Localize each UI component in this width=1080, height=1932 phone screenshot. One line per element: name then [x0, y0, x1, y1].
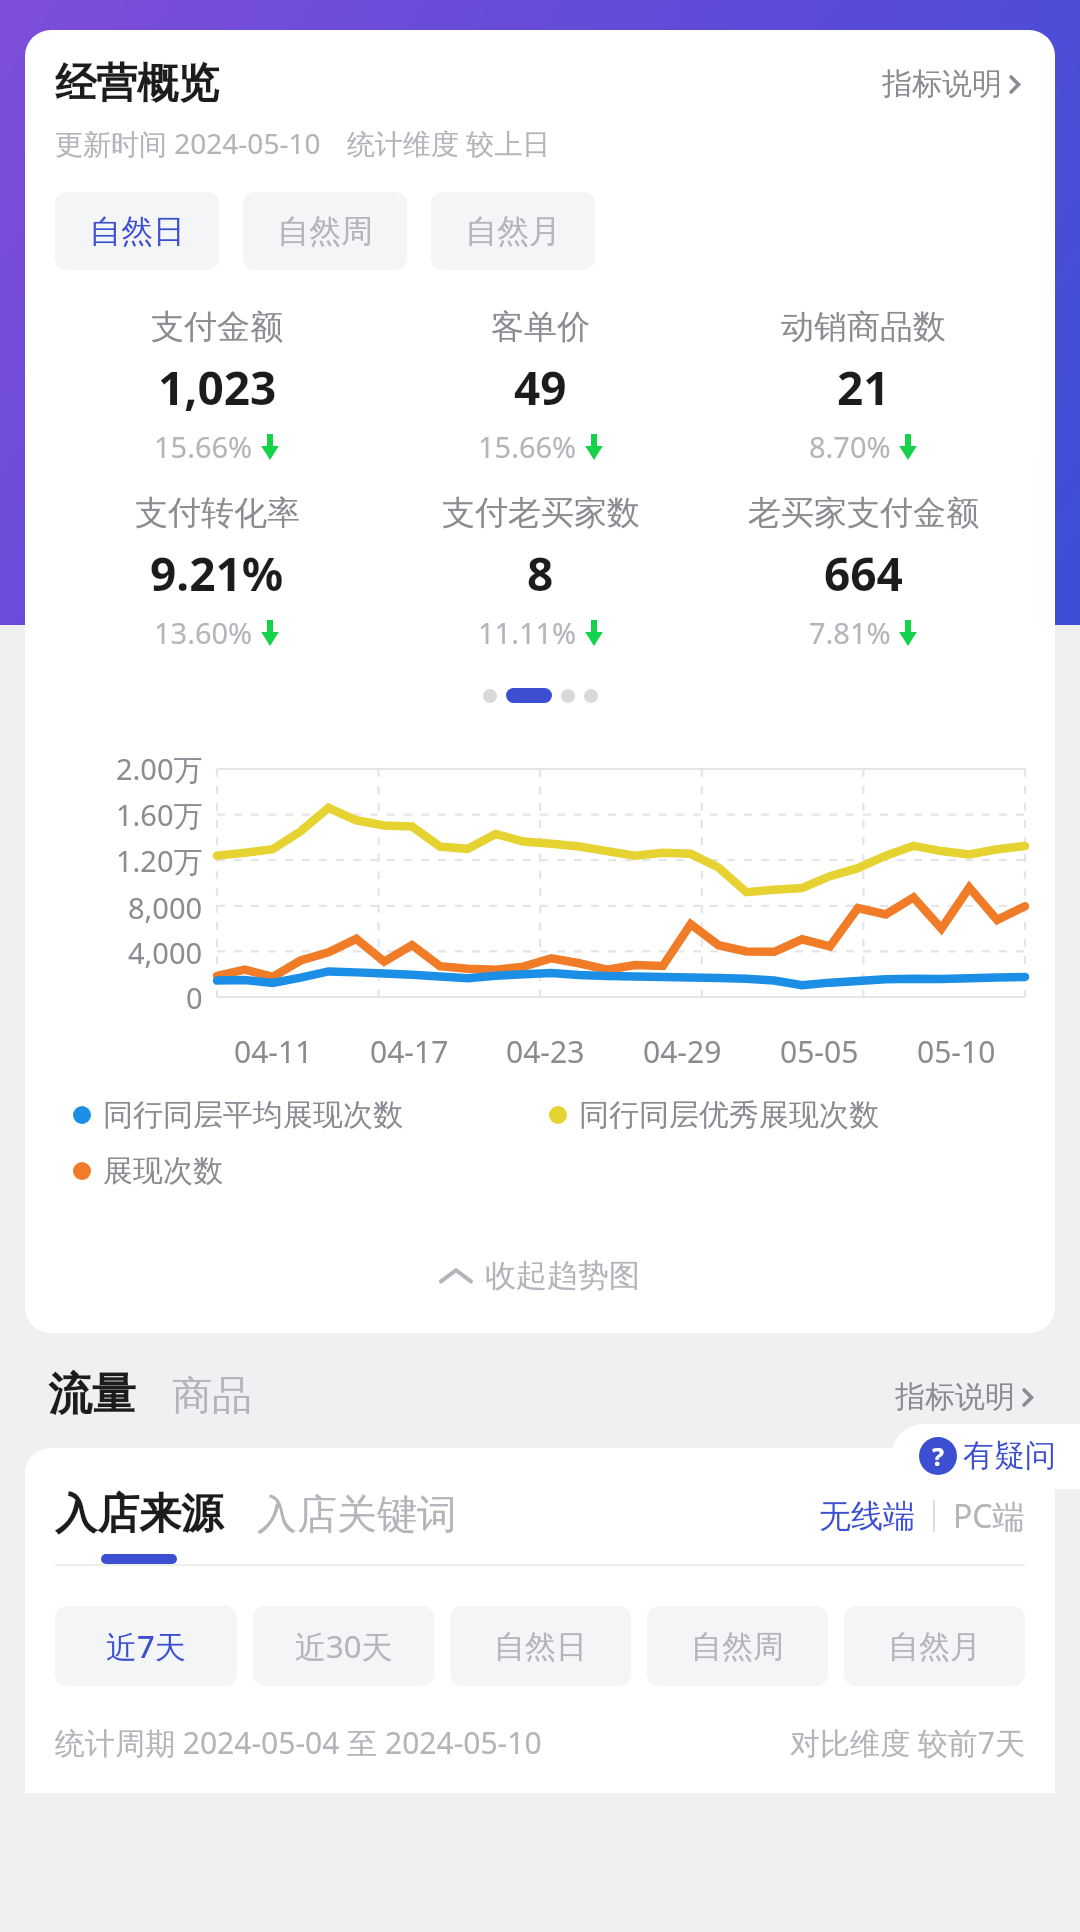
- button[interactable]: 商品: [172, 1370, 252, 1422]
- staticText: 商品: [172, 1370, 252, 1420]
- staticText: 支付金额: [151, 306, 283, 348]
- button[interactable]: 自然日: [55, 192, 219, 270]
- button[interactable]: 有疑问 帮助: [891, 1424, 1080, 1489]
- button[interactable]: PC端: [953, 1494, 1025, 1538]
- staticText: 15.66%: [154, 427, 253, 466]
- staticText: 客单价: [491, 306, 590, 348]
- staticText: 自然周: [691, 1627, 784, 1666]
- staticText: 05-10: [917, 1031, 996, 1072]
- staticText: 更新时间 2024-05-10: [55, 124, 321, 162]
- button[interactable]: 入店关键词: [257, 1489, 457, 1564]
- staticText: 04-17: [370, 1031, 449, 1072]
- button[interactable]: 自然月: [844, 1606, 1025, 1686]
- button[interactable]: 同行同层优秀展现次数: [549, 1096, 1025, 1134]
- staticText: 有疑问: [963, 1436, 1056, 1475]
- staticText: 支付转化率: [135, 492, 300, 534]
- staticText: 04-23: [506, 1031, 585, 1072]
- staticText: 15.66%: [478, 427, 577, 466]
- button[interactable]: 客单价: [379, 306, 702, 466]
- staticText: 04-11: [234, 1031, 313, 1072]
- button[interactable]: 自然日: [450, 1606, 631, 1686]
- staticText: 指标说明: [895, 1378, 1015, 1416]
- staticText: 流量: [48, 1367, 136, 1422]
- staticText: 21: [837, 356, 890, 419]
- staticText: 支付老买家数: [442, 492, 640, 534]
- staticText: 8,000: [128, 888, 203, 927]
- staticText: 4,000: [128, 933, 203, 972]
- button[interactable]: 支付金额: [55, 306, 379, 466]
- staticText: 664: [824, 542, 903, 605]
- staticText: ?: [932, 1439, 944, 1473]
- staticText: 同行同层平均展现次数: [103, 1096, 403, 1134]
- button[interactable]: 动销商品数: [702, 306, 1025, 466]
- button[interactable]: 同行同层平均展现次数: [73, 1096, 549, 1134]
- staticText: 动销商品数: [781, 306, 946, 348]
- staticText: 对比维度 较前7天: [790, 1722, 1025, 1763]
- button[interactable]: 收起趋势图: [55, 1246, 1025, 1305]
- staticText: 自然月: [888, 1627, 981, 1666]
- staticText: 8: [527, 542, 554, 605]
- button[interactable]: 老买家支付金额: [702, 492, 1025, 652]
- staticText: 经营概览: [55, 58, 219, 110]
- button[interactable]: 支付老买家数: [379, 492, 702, 652]
- button[interactable]: 自然周: [243, 192, 407, 270]
- staticText: 统计维度 较上日: [347, 124, 551, 162]
- staticText: 04-29: [643, 1031, 722, 1072]
- staticText: 自然月: [465, 211, 561, 251]
- staticText: 收起趋势图: [485, 1256, 640, 1295]
- button[interactable]: 展现次数: [73, 1152, 549, 1190]
- staticText: PC端: [953, 1494, 1025, 1538]
- staticText: 0: [186, 978, 203, 1017]
- button[interactable]: 入店来源: [55, 1488, 223, 1564]
- button[interactable]: 近7天: [55, 1606, 237, 1686]
- staticText: 老买家支付金额: [748, 492, 979, 534]
- staticText: 1,023: [158, 356, 277, 419]
- staticText: 2.00万: [116, 749, 203, 789]
- staticText: 展现次数: [103, 1152, 223, 1190]
- staticText: 1.60万: [116, 795, 203, 835]
- button[interactable]: 无线端: [819, 1496, 915, 1536]
- button[interactable]: 流量: [48, 1367, 136, 1422]
- staticText: 无线端: [819, 1496, 915, 1536]
- staticText: 指标说明: [882, 65, 1002, 103]
- staticText: 入店来源: [55, 1488, 223, 1541]
- staticText: 自然周: [277, 211, 373, 251]
- staticText: 1.20万: [116, 841, 203, 881]
- staticText: 9.21%: [150, 542, 284, 605]
- staticText: 05-05: [780, 1031, 859, 1072]
- staticText: 同行同层优秀展现次数: [579, 1096, 879, 1134]
- button[interactable]: 支付转化率: [55, 492, 379, 652]
- button[interactable]: 指标说明: [895, 1378, 1032, 1422]
- staticText: 入店关键词: [257, 1489, 457, 1539]
- button[interactable]: 自然周: [647, 1606, 828, 1686]
- staticText: 11.11%: [478, 613, 577, 652]
- staticText: 13.60%: [154, 613, 253, 652]
- button[interactable]: 近30天: [253, 1606, 434, 1686]
- staticText: 自然日: [89, 211, 185, 251]
- staticText: 近30天: [295, 1625, 393, 1667]
- staticText: 49: [514, 356, 567, 419]
- button[interactable]: 指标说明: [876, 59, 1025, 109]
- staticText: 统计周期 2024-05-04 至 2024-05-10: [55, 1722, 542, 1763]
- staticText: 自然日: [494, 1627, 587, 1666]
- staticText: 近7天: [106, 1625, 186, 1667]
- staticText: 8.70%: [809, 427, 891, 466]
- button[interactable]: 自然月: [431, 192, 595, 270]
- staticText: 7.81%: [809, 613, 891, 652]
